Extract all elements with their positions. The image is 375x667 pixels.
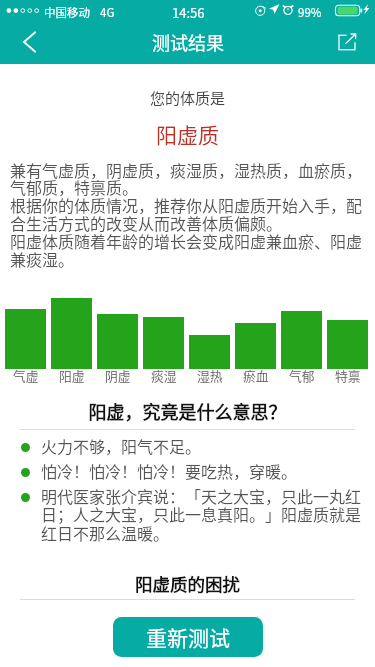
staticText: 兼有气虚质，阴虚质，痰湿质，湿热质，血瘀质，气郁质，特禀质。 根据你的体质情况，… [10, 158, 365, 271]
staticText: 气虚 [13, 366, 39, 385]
staticText: 99% [298, 4, 322, 21]
button[interactable]: Share [331, 20, 375, 64]
button[interactable]: Back [0, 20, 48, 64]
staticText: 阳虚，究竟是什么意思？ [0, 398, 375, 424]
staticText: 特禀 [335, 366, 361, 385]
staticText: 火力不够，阳气不足。 [41, 434, 202, 457]
staticText: 14:56 [172, 3, 205, 22]
staticText: 痰湿 [151, 366, 177, 385]
staticText: 4G [100, 4, 115, 21]
button[interactable]: 重新测试 [113, 617, 263, 657]
staticText: 瘀血 [243, 366, 269, 385]
staticText: 阳虚质 [0, 119, 375, 149]
staticText: 阳虚质的困扰 [0, 571, 375, 596]
staticText: 气郁 [289, 366, 315, 385]
staticText: 湿热 [197, 366, 223, 385]
staticText: 怕冷！怕冷！怕冷！要吃热，穿暖。 [41, 459, 298, 482]
staticText: 测试结果 [152, 29, 224, 55]
staticText: 阴虚 [105, 366, 131, 385]
staticText: 明代医家张介宾说：「天之大宝，只此一丸红日；人之大宝，只此一息真阳。」阳虚质就是… [41, 484, 362, 545]
staticText: 重新测试 [146, 622, 230, 652]
staticText: 您的体质是 [0, 87, 375, 109]
staticText: 阳虚 [59, 366, 85, 385]
staticText: 中国移动 [44, 4, 90, 21]
